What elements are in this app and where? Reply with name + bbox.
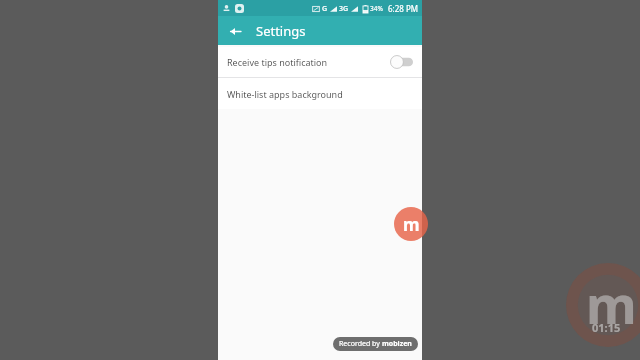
staticText: Recorded by xyxy=(339,339,382,349)
staticText: White-list apps background xyxy=(227,88,343,100)
staticText: 3G xyxy=(339,4,349,14)
button[interactable]: Back xyxy=(222,18,248,44)
button[interactable]: Receive tips notification toggle xyxy=(390,55,413,69)
button[interactable]: White-list apps background xyxy=(218,78,422,109)
staticText: 34% xyxy=(370,4,383,13)
button[interactable]: Receive tips notification xyxy=(218,47,422,77)
staticText: m xyxy=(586,268,637,339)
staticText: Settings xyxy=(256,22,306,40)
staticText: 01:15 xyxy=(592,320,621,335)
staticText: 6:28 PM xyxy=(388,3,419,14)
button[interactable]: Mobizen recorder xyxy=(394,207,428,241)
staticText: G xyxy=(322,4,328,14)
staticText: Receive tips notification xyxy=(227,56,390,68)
staticText: mobizen xyxy=(382,339,412,349)
staticText: m xyxy=(403,213,420,236)
